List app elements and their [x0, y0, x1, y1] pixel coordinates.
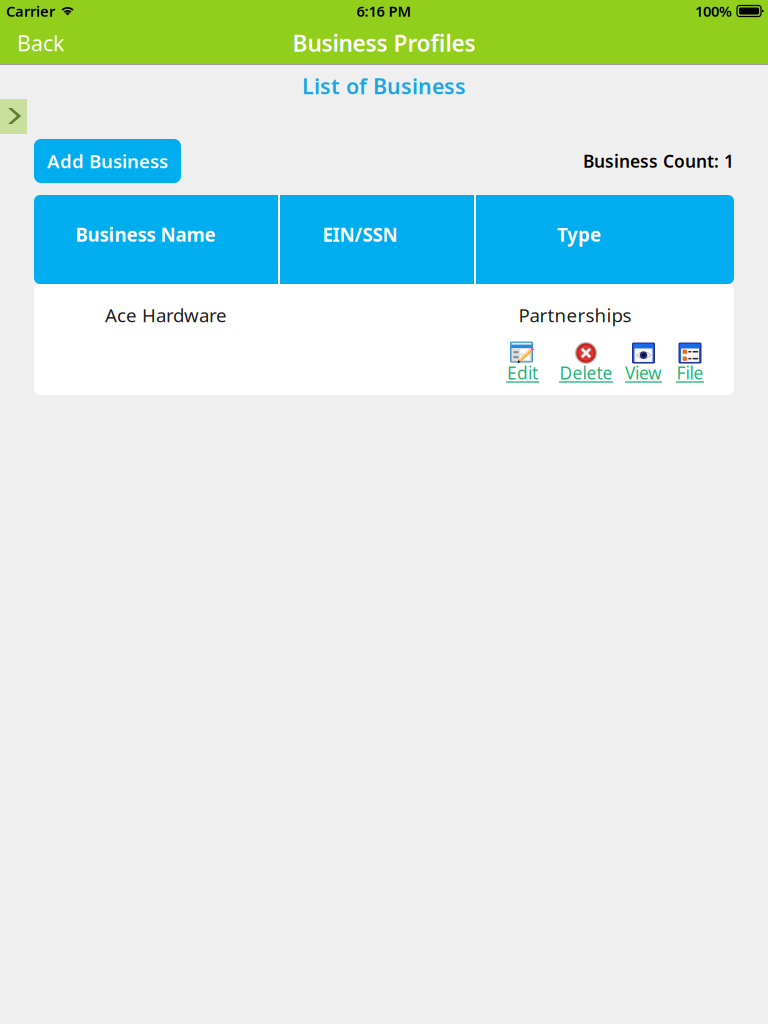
button[interactable]: Add Business — [34, 139, 181, 183]
staticText: 6:16 PM — [356, 1, 411, 21]
staticText: Business Name — [75, 222, 215, 247]
staticText: Add Business — [47, 149, 168, 173]
staticText: Type — [557, 222, 601, 247]
staticText: File — [676, 361, 703, 384]
staticText: Back — [17, 29, 64, 57]
staticText: Carrier — [6, 1, 55, 21]
staticText: EIN/SSN — [322, 222, 397, 247]
staticText: 100% — [695, 1, 732, 21]
staticText: Partnerships — [518, 303, 631, 327]
staticText: View — [625, 361, 662, 384]
button[interactable]: View — [625, 342, 662, 383]
staticText: Edit — [507, 361, 538, 384]
staticText: Business Count: 1 — [583, 149, 734, 172]
staticText: Business Profiles — [292, 28, 475, 58]
staticText: List of Business — [302, 72, 466, 100]
button[interactable]: Open menu — [0, 99, 27, 134]
staticText: Delete — [559, 361, 612, 384]
staticText: Ace Hardware — [105, 303, 227, 327]
button[interactable]: Back — [0, 22, 76, 64]
button[interactable]: Delete — [559, 342, 613, 383]
button[interactable]: File — [676, 342, 704, 383]
button[interactable]: Edit — [506, 342, 539, 383]
